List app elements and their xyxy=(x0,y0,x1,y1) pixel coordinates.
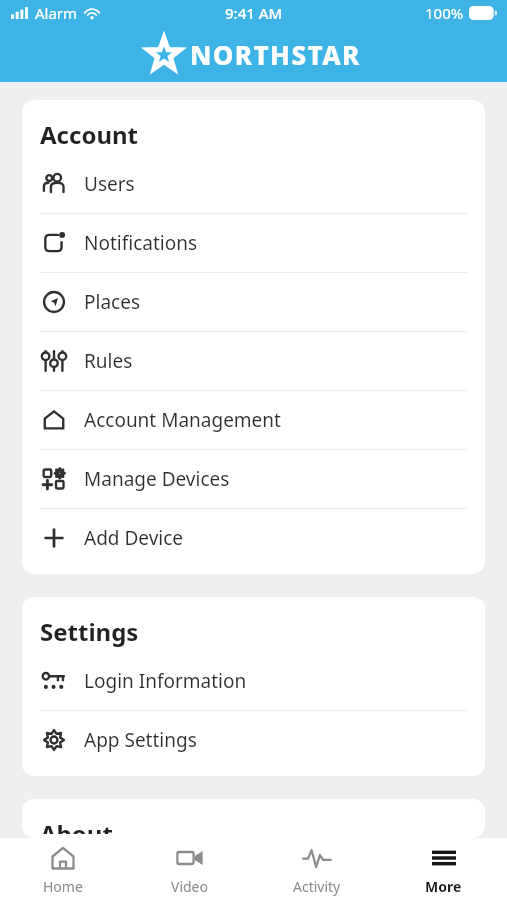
button[interactable]: Notifications xyxy=(22,214,485,272)
staticText: Manage Devices xyxy=(84,466,230,492)
staticText: Login Information xyxy=(84,668,247,694)
staticText: Home xyxy=(43,877,83,896)
staticText: Rules xyxy=(84,348,133,374)
staticText: Settings xyxy=(40,615,139,648)
button[interactable]: Rules xyxy=(22,332,485,390)
button[interactable]: Account Management xyxy=(22,391,485,449)
staticText: 9:41 AM xyxy=(225,3,283,23)
staticText: Notifications xyxy=(84,230,198,256)
staticText: 100% xyxy=(425,3,464,23)
staticText: Places xyxy=(84,289,140,315)
staticText: More xyxy=(425,877,462,896)
button[interactable]: Activity xyxy=(253,838,380,900)
staticText: Video xyxy=(171,877,208,896)
button[interactable]: App Settings xyxy=(22,711,485,769)
staticText: About xyxy=(40,817,113,834)
staticText: Add Device xyxy=(84,525,184,551)
button[interactable]: Video xyxy=(126,838,253,900)
button[interactable]: Home xyxy=(0,838,126,900)
button[interactable]: Manage Devices xyxy=(22,450,485,508)
staticText: Alarm xyxy=(35,3,78,23)
staticText: App Settings xyxy=(84,727,197,753)
staticText: Account Management xyxy=(84,407,281,433)
staticText: Activity xyxy=(293,877,341,896)
staticText: NORTHSTAR xyxy=(190,37,361,72)
staticText: Users xyxy=(84,171,135,197)
button[interactable]: More xyxy=(380,838,507,900)
button[interactable]: Places xyxy=(22,273,485,331)
button[interactable]: Login Information xyxy=(22,652,485,710)
staticText: Account xyxy=(40,118,138,151)
button[interactable]: Users xyxy=(22,155,485,213)
button[interactable]: Add Device xyxy=(22,509,485,567)
